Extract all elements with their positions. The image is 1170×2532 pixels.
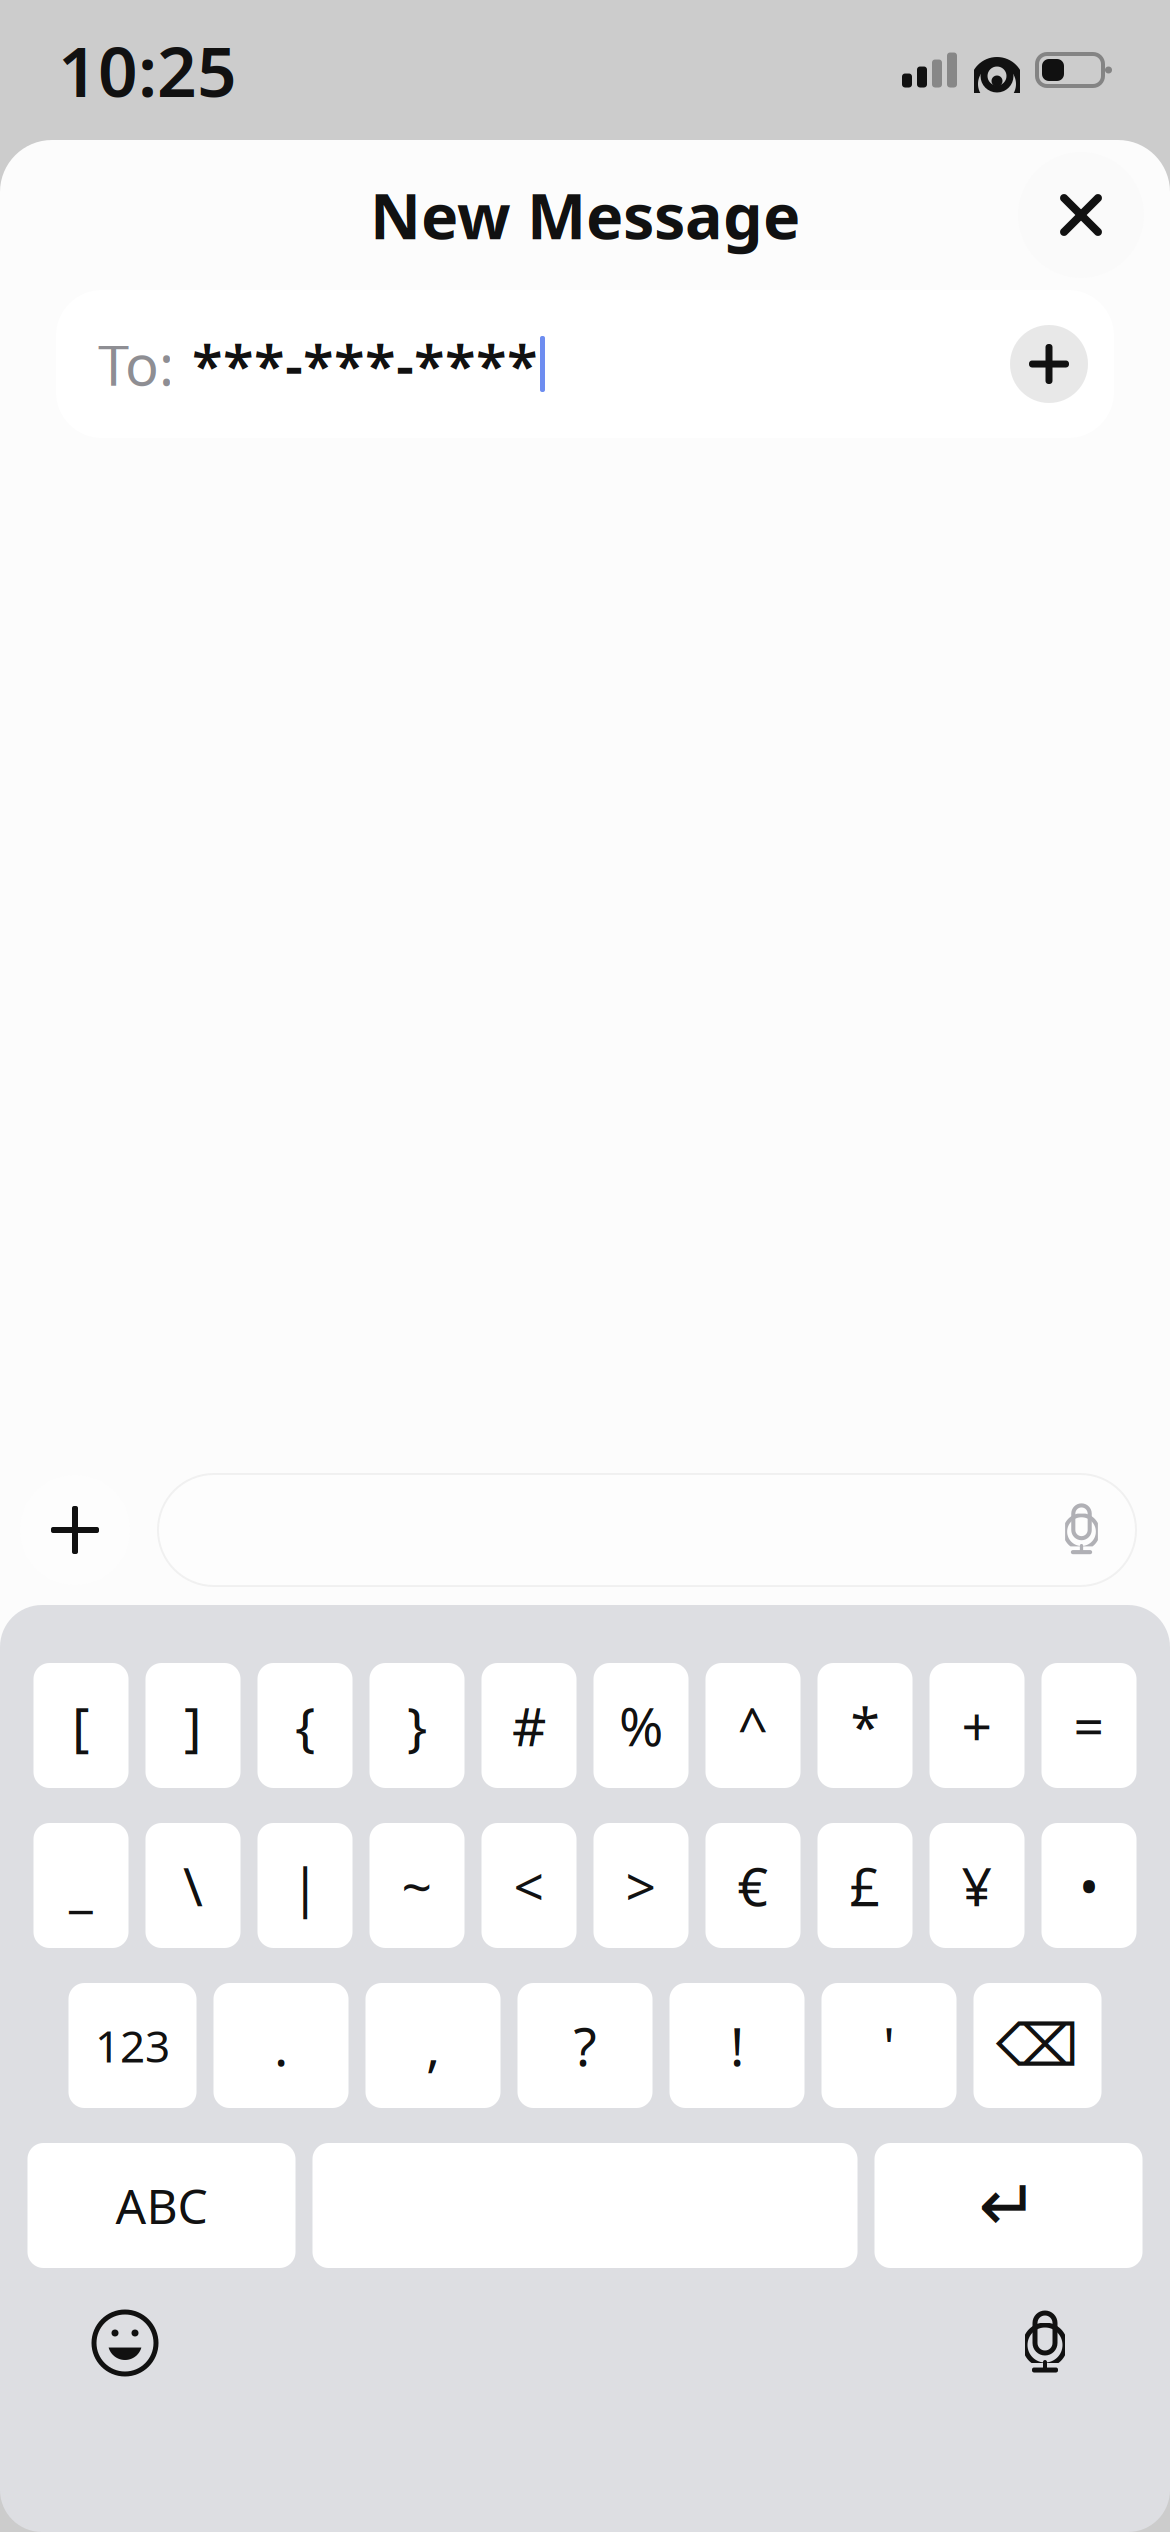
staticText: . [274,2010,288,2081]
staticText: ¥ [961,1850,992,1921]
staticText: * [850,1690,879,1761]
button[interactable]: \ [145,1823,240,1948]
staticText: > [625,1850,656,1921]
button[interactable]: Add contact [1010,325,1088,403]
button[interactable]: _ [33,1823,128,1948]
staticText: € [737,1850,768,1921]
button[interactable]: { [257,1663,352,1788]
button[interactable]: ~ [369,1823,464,1948]
button[interactable]: • [1041,1823,1136,1948]
staticText: ? [573,2010,596,2081]
staticText: ABC [115,2174,207,2237]
staticText: _ [69,1850,93,1921]
button[interactable]: € [705,1823,800,1948]
staticText: \ [183,1850,203,1921]
staticText: • [1079,1850,1099,1921]
staticText: { [295,1690,315,1761]
button[interactable]: Close [1018,152,1144,278]
button[interactable]: < [481,1823,576,1948]
button[interactable]: [ [33,1663,128,1788]
staticText: To: [98,327,174,401]
button[interactable]: Dictation [990,2288,1100,2398]
button[interactable]: , [365,1983,500,2108]
staticText: ! [730,2010,744,2081]
staticText: < [513,1850,544,1921]
button[interactable]: . [213,1983,348,2108]
button[interactable] [158,1474,1136,1586]
button[interactable]: ^ [705,1663,800,1788]
button[interactable]: Return [874,2143,1142,2268]
button[interactable]: > [593,1823,688,1948]
button[interactable]: | [257,1823,352,1948]
button[interactable]: ' [821,1983,956,2108]
staticText: ⌫ [996,2012,1079,2079]
staticText: New Message [370,173,800,257]
staticText: ↵ [978,2165,1038,2246]
button[interactable]: ABC [27,2143,295,2268]
staticText: [ [72,1690,90,1761]
button[interactable]: * [817,1663,912,1788]
button[interactable]: ] [145,1663,240,1788]
staticText: = [1073,1690,1104,1761]
button[interactable]: ? [517,1983,652,2108]
staticText: + [961,1690,992,1761]
staticText: ***-***-**** [192,327,538,401]
staticText: , [426,2010,440,2081]
button[interactable]: ! [669,1983,804,2108]
staticText: % [619,1690,663,1761]
button[interactable]: } [369,1663,464,1788]
staticText: ^ [737,1690,768,1761]
button[interactable]: 123 [68,1983,196,2108]
staticText: | [290,1850,319,1921]
staticText: £ [849,1850,880,1921]
staticText: ' [883,2010,895,2081]
button[interactable]: Delete [973,1983,1101,2108]
staticText: ~ [401,1850,432,1921]
staticText: 123 [95,2016,170,2075]
staticText: # [512,1690,546,1761]
staticText: } [407,1690,427,1761]
button[interactable]: + [929,1663,1024,1788]
button[interactable]: % [593,1663,688,1788]
button[interactable]: # [481,1663,576,1788]
button[interactable]: £ [817,1823,912,1948]
button[interactable]: ¥ [929,1823,1024,1948]
button[interactable]: Attach [20,1475,130,1585]
button[interactable]: = [1041,1663,1136,1788]
button[interactable]: Emoji [70,2288,180,2398]
staticText: 10:25 [58,24,237,116]
staticText: ] [184,1690,202,1761]
